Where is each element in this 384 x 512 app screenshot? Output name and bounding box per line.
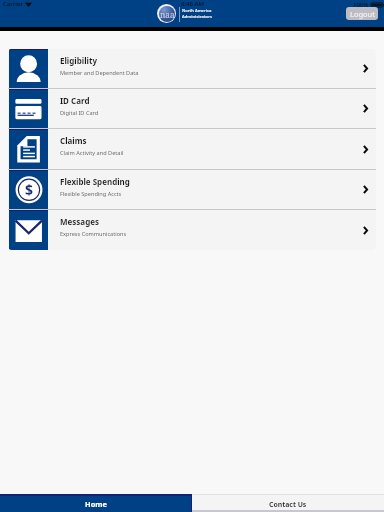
staticText: Eligibility — [60, 55, 97, 66]
staticText: 100% — [353, 1, 369, 9]
staticText: North America — [182, 8, 212, 14]
staticText: Flexible Spending Accts — [60, 190, 122, 198]
staticText: Carrier — [3, 0, 23, 8]
staticText: Member and Dependent Data — [60, 69, 139, 77]
staticText: Flexible Spending — [60, 176, 130, 187]
staticText: Home — [85, 499, 107, 509]
button[interactable]: Logout — [346, 7, 378, 20]
other: ID Card — [9, 89, 48, 128]
button[interactable]: Contact Us — [192, 494, 384, 512]
staticText: Claims — [60, 135, 87, 146]
button[interactable]: Home — [0, 494, 192, 512]
button[interactable]: ID Card — [8, 89, 376, 128]
other: Eligibility — [9, 49, 48, 88]
staticText: Digital ID Card — [60, 109, 99, 117]
button[interactable]: Eligibility — [8, 49, 376, 88]
button[interactable]: Claims — [8, 129, 376, 169]
button[interactable]: Messages — [8, 210, 376, 250]
button[interactable]: Flexible Spending — [8, 170, 376, 209]
staticText: Claim Activity and Detail — [60, 149, 124, 157]
staticText: naa — [160, 9, 175, 20]
staticText: Express Communications — [60, 230, 127, 238]
other: Messages — [9, 210, 48, 250]
staticText: 8:46 AM — [181, 0, 204, 8]
staticText: $ — [25, 180, 34, 199]
staticText: Messages — [60, 216, 99, 227]
other: Claims — [9, 129, 48, 169]
staticText: Contact Us — [269, 500, 307, 509]
other: Flexible Spending — [9, 170, 48, 209]
staticText: Logout — [350, 9, 375, 19]
staticText: Administrators — [182, 14, 212, 20]
staticText: ID Card — [60, 95, 90, 106]
